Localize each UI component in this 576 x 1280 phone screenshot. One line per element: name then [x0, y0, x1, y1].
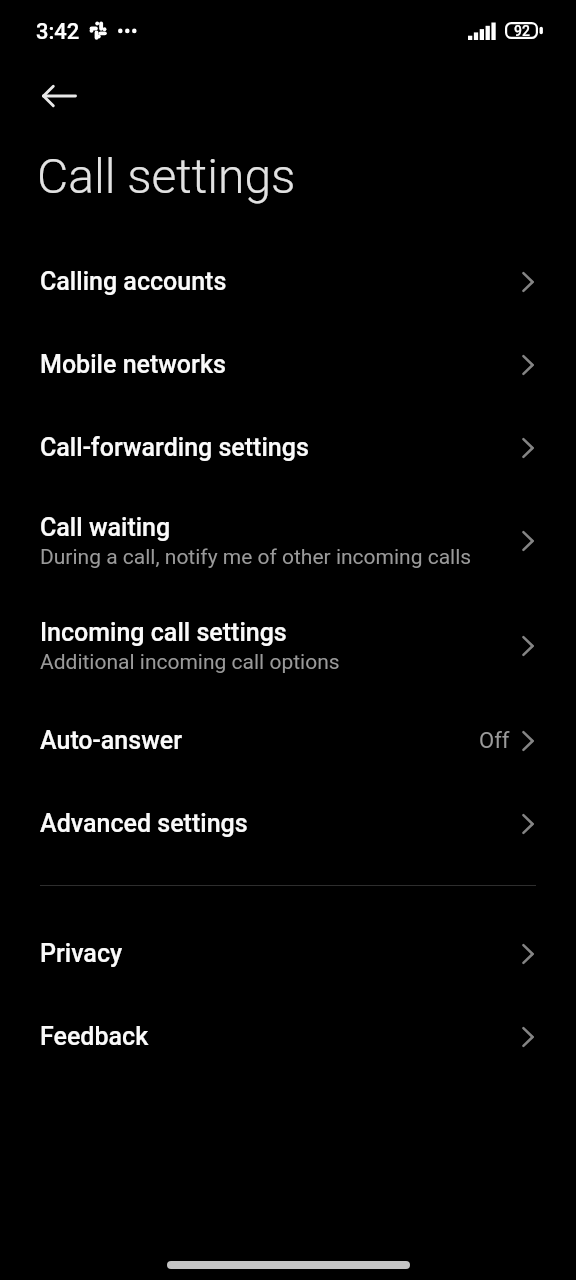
button[interactable]: Back — [28, 65, 90, 127]
staticText: Call-forwarding settings — [40, 433, 309, 462]
button[interactable]: Calling accounts — [0, 240, 576, 323]
staticText: Privacy — [40, 939, 123, 968]
staticText: 92 — [514, 23, 530, 39]
staticText: Call waiting — [40, 513, 171, 542]
button[interactable]: Incoming call settings — [0, 593, 576, 699]
staticText: During a call, notify me of other incomi… — [40, 545, 472, 570]
staticText: Off — [479, 728, 510, 754]
staticText: Mobile networks — [40, 350, 226, 379]
staticText: Auto-answer — [40, 726, 182, 755]
staticText: Incoming call settings — [40, 618, 287, 647]
button[interactable]: Privacy — [0, 912, 576, 995]
staticText: Call settings — [37, 148, 296, 204]
staticText: Additional incoming call options — [40, 650, 340, 675]
button[interactable]: Call waiting — [0, 489, 576, 593]
button[interactable]: Mobile networks — [0, 323, 576, 406]
staticText: Calling accounts — [40, 267, 227, 296]
button[interactable]: Call-forwarding settings — [0, 406, 576, 489]
staticText: 3:42 — [36, 19, 80, 45]
button[interactable]: Advanced settings — [0, 782, 576, 865]
staticText: Advanced settings — [40, 809, 248, 838]
button[interactable]: Feedback — [0, 995, 576, 1078]
staticText: Feedback — [40, 1022, 149, 1051]
button[interactable]: Auto-answer — [0, 699, 576, 782]
